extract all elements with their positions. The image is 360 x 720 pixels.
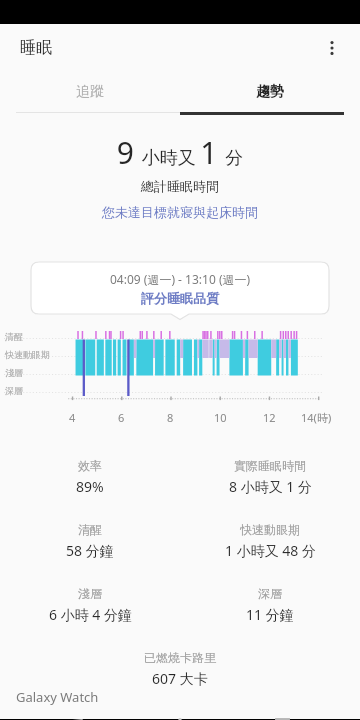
staticText: 6 小時 4 分鐘 <box>49 605 132 624</box>
staticText: 效率 <box>78 458 102 473</box>
staticText: 淺層 <box>5 367 23 378</box>
staticText: 4 <box>69 410 76 425</box>
staticText: 清醒 <box>5 331 23 342</box>
staticText: 89% <box>76 477 104 496</box>
staticText: 已燃燒卡路里 <box>144 650 216 665</box>
staticText: 12 <box>263 410 276 425</box>
staticText: 1 小時又 48 分 <box>225 541 316 560</box>
button[interactable]: 您未達目標就寢與起床時間 <box>0 202 360 222</box>
button[interactable]: 追蹤 <box>0 72 180 112</box>
button[interactable]: 趨勢 <box>180 72 360 112</box>
staticText: 深層 <box>258 586 282 601</box>
staticText: 607 大卡 <box>152 669 208 688</box>
staticText: 追蹤 <box>76 83 104 101</box>
staticText: 8 小時又 1 分 <box>229 477 312 496</box>
staticText: 10 <box>214 410 227 425</box>
staticText: 淺層 <box>78 586 102 601</box>
staticText: 11 分鐘 <box>246 605 294 624</box>
staticText: 8 <box>167 410 174 425</box>
button[interactable]: Home <box>156 719 204 720</box>
staticText: 快速動眼期 <box>5 349 50 360</box>
staticText: 04:09 (週一) - 13:10 (週一) <box>110 271 251 287</box>
button[interactable]: Recent apps <box>258 719 306 720</box>
staticText: 實際睡眠時間 <box>234 458 306 473</box>
staticText: 評分睡眠品質 <box>141 290 219 306</box>
staticText: 6 <box>118 410 125 425</box>
staticText: 58 分鐘 <box>66 541 114 560</box>
staticText: 清醒 <box>78 522 102 537</box>
staticText: 睡眠 <box>20 38 52 58</box>
button[interactable]: Back <box>54 719 102 720</box>
staticText: Galaxy Watch <box>16 688 99 706</box>
button[interactable] <box>31 262 329 314</box>
button[interactable]: More options <box>310 26 354 70</box>
staticText: 快速動眼期 <box>240 522 300 537</box>
staticText: 9 小時又 1 分 <box>0 132 360 173</box>
staticText: 14(時) <box>301 410 332 425</box>
staticText: 總計睡眠時間 <box>0 178 360 194</box>
staticText: 趨勢 <box>256 83 284 101</box>
staticText: 深層 <box>5 385 23 396</box>
